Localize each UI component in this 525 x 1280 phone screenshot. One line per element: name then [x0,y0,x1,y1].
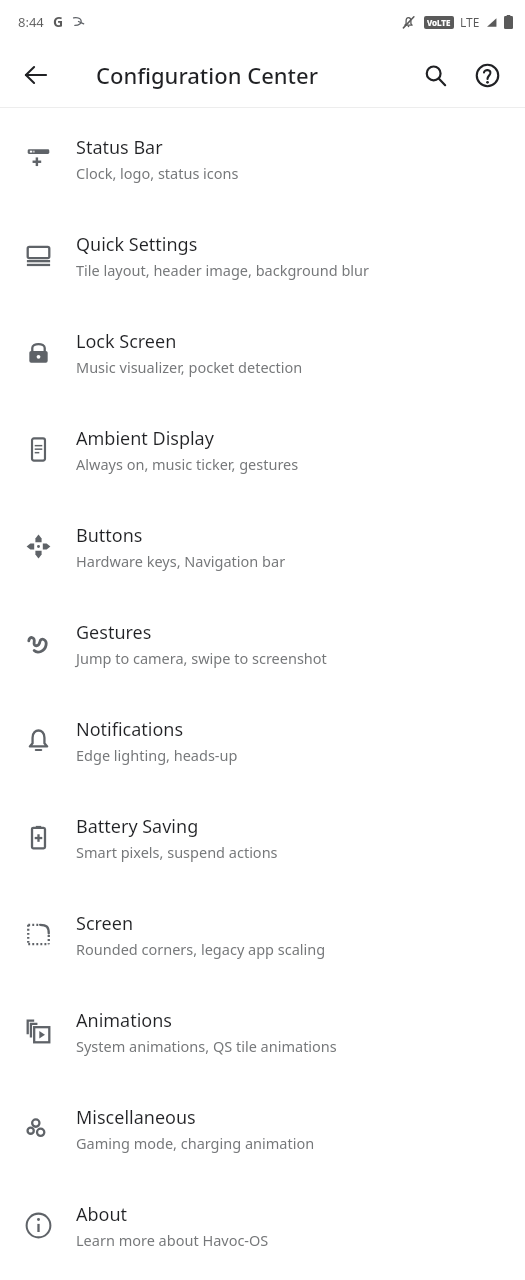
staticText: Screen [76,911,134,936]
button[interactable]: About [0,1177,525,1274]
staticText: Jump to camera, swipe to screenshot [76,648,327,668]
staticText: Edge lighting, heads-up [76,745,238,765]
button[interactable]: Lock Screen [0,304,525,401]
staticText: Gestures [76,620,152,645]
staticText: Music visualizer, pocket detection [76,357,303,377]
button[interactable]: Search [409,49,461,101]
staticText: 8:44 [18,13,44,31]
button[interactable]: Battery Saving [0,789,525,886]
button[interactable]: Gestures [0,595,525,692]
staticText: About [76,1202,128,1227]
button[interactable]: Screen [0,886,525,983]
button[interactable]: Miscellaneous [0,1080,525,1177]
staticText: Lock Screen [76,329,177,354]
staticText: LTE [460,14,480,30]
staticText: Buttons [76,523,143,548]
button[interactable]: Notifications [0,692,525,789]
staticText: Quick Settings [76,232,198,257]
button[interactable]: Quick Settings [0,207,525,304]
button[interactable]: Status Bar [0,110,525,207]
staticText: Smart pixels, suspend actions [76,842,278,862]
button[interactable]: Buttons [0,498,525,595]
staticText: Always on, music ticker, gestures [76,454,299,474]
staticText: Clock, logo, status icons [76,163,239,183]
staticText: G [53,12,64,31]
staticText: Miscellaneous [76,1105,196,1130]
button[interactable]: Help [461,49,513,101]
staticText: Learn more about Havoc-OS [76,1230,269,1250]
staticText: Ambient Display [76,426,214,451]
staticText: Notifications [76,717,184,742]
staticText: Tile layout, header image, background bl… [76,260,370,280]
staticText: Configuration Center [96,60,318,90]
staticText: System animations, QS tile animations [76,1036,337,1056]
staticText: Rounded corners, legacy app scaling [76,939,326,959]
staticText: Battery Saving [76,814,199,839]
staticText: Animations [76,1008,172,1033]
staticText: Hardware keys, Navigation bar [76,551,286,571]
staticText: Status Bar [76,135,163,160]
button[interactable]: Back [8,47,64,103]
staticText: Gaming mode, charging animation [76,1133,315,1153]
button[interactable]: Animations [0,983,525,1080]
staticText: VoLTE [427,17,451,28]
button[interactable]: Ambient Display [0,401,525,498]
